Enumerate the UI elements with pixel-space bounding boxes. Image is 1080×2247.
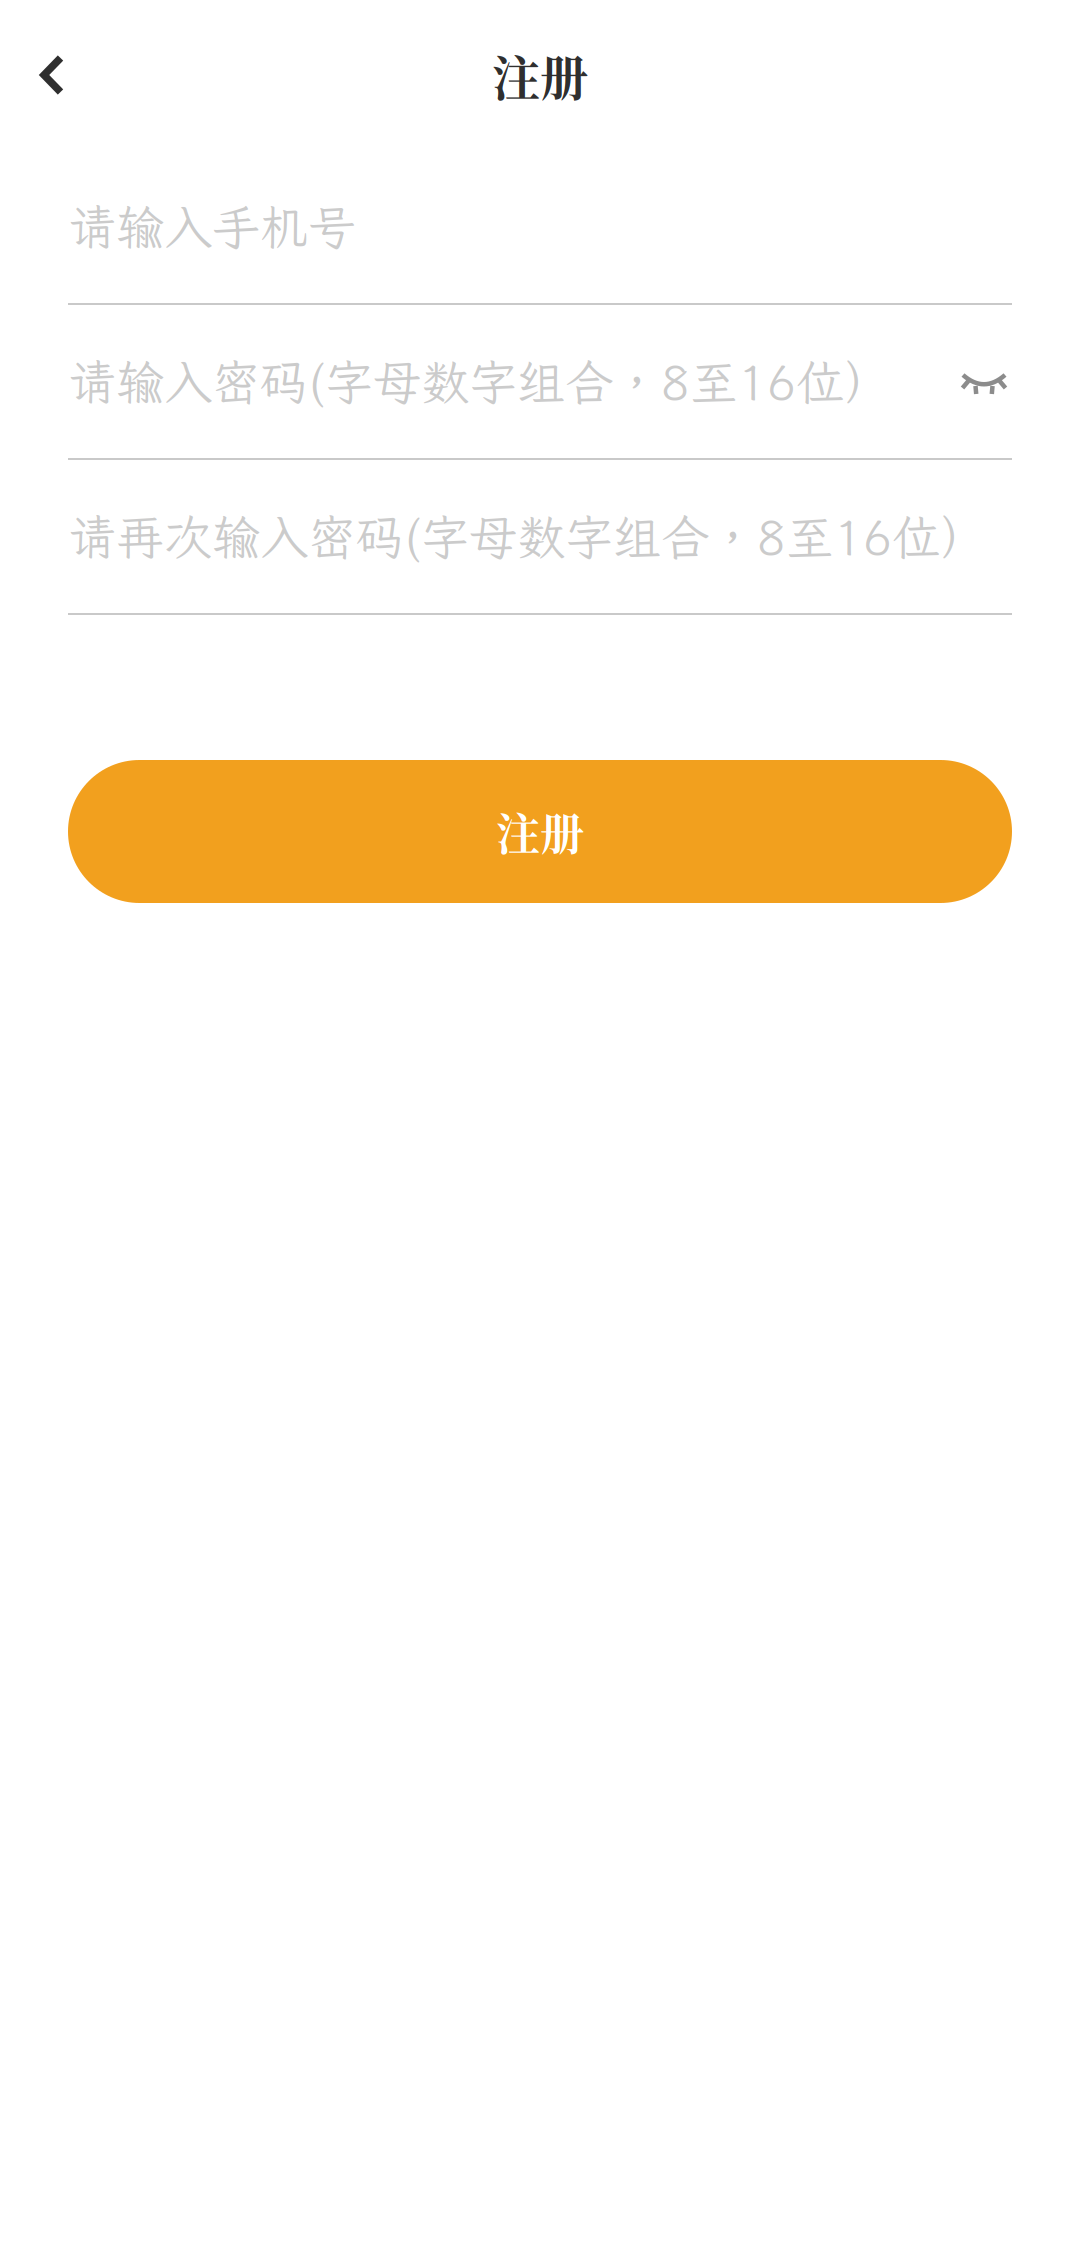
staticText: 请再次输入密码(字母数字组合，8至16位） — [68, 505, 988, 568]
staticText: 请输入手机号 — [68, 195, 356, 258]
button[interactable]: Show password — [956, 326, 1012, 436]
staticText: 注册 — [492, 40, 588, 109]
button[interactable]: 注册 — [68, 760, 1012, 903]
staticText: 请输入密码(字母数字组合，8至16位） — [68, 350, 892, 413]
button[interactable]: Back — [0, 15, 105, 135]
staticText: 注册 — [496, 800, 584, 863]
